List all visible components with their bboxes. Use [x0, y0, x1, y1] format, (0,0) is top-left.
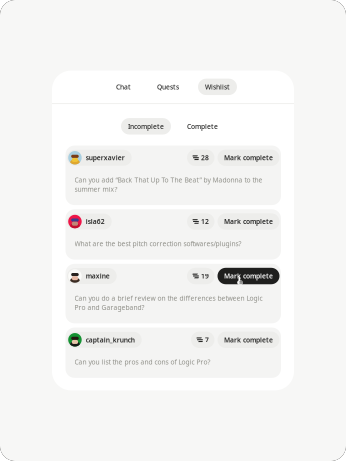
button[interactable]: Wishlist [198, 79, 237, 95]
staticText: captain_krunch [86, 335, 135, 344]
staticText: Mark complete [224, 217, 273, 226]
staticText: Can you add “Back That Up To The Beat” b… [74, 175, 262, 194]
staticText: Mark complete [224, 335, 273, 344]
button[interactable]: Complete [180, 118, 225, 135]
staticText: Complete [187, 122, 218, 131]
staticText: Mark complete [224, 153, 273, 162]
staticText: Incomplete [128, 122, 164, 131]
staticText: What are the best pitch correction softw… [74, 239, 241, 248]
staticText: 19 [201, 272, 209, 280]
button[interactable]: Incomplete [121, 118, 171, 135]
button[interactable]: Chat [109, 79, 138, 95]
staticText: maxine [86, 272, 110, 280]
button[interactable]: Mark complete [217, 268, 279, 284]
button[interactable]: Quests [150, 79, 186, 95]
staticText: Can you do a brief review on the differe… [74, 294, 262, 312]
button[interactable]: Mark complete [217, 149, 279, 166]
staticText: 28 [201, 153, 209, 162]
staticText: isla62 [86, 217, 105, 226]
staticText: superxavier [86, 153, 125, 162]
staticText: Chat [116, 82, 131, 91]
staticText: Wishlist [205, 82, 230, 91]
button[interactable]: Mark complete [217, 332, 279, 348]
staticText: 7 [205, 335, 209, 344]
staticText: Can you list the pros and cons of Logic … [74, 357, 210, 366]
button[interactable]: Mark complete [217, 213, 279, 230]
staticText: Mark complete [224, 272, 273, 280]
staticText: 12 [201, 217, 209, 226]
staticText: Quests [157, 82, 179, 91]
